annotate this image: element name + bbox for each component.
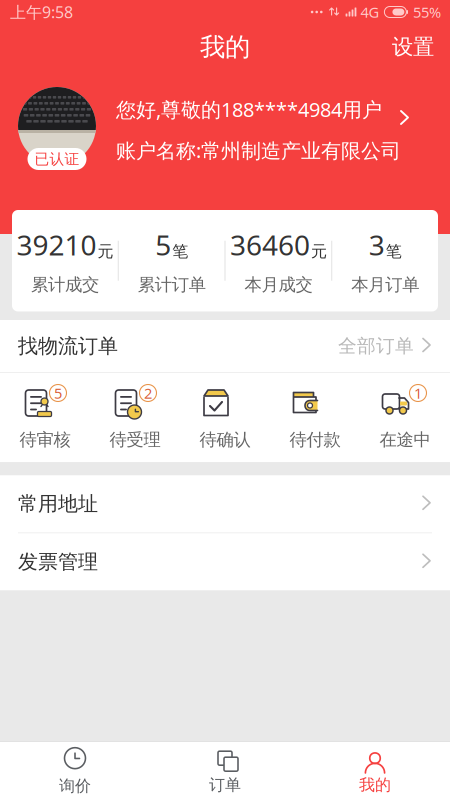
staticText: 上午9:58 — [10, 1, 73, 23]
staticText: 2 — [144, 383, 152, 403]
button[interactable]: 设置 — [376, 24, 450, 70]
staticText: 本月成交 — [244, 274, 312, 295]
staticText: 待受理 — [109, 429, 160, 450]
button[interactable]: 询价 — [0, 742, 150, 800]
staticText: 询价 — [59, 776, 91, 796]
button[interactable]: 常用地址 — [0, 475, 450, 532]
staticText: 已认证 — [34, 150, 79, 168]
button[interactable]: 订单 — [150, 742, 300, 800]
staticText: 累计成交 — [31, 274, 99, 295]
button[interactable]: 1 — [360, 386, 450, 450]
staticText: 在途中 — [379, 429, 430, 450]
staticText: 常用地址 — [18, 491, 98, 516]
staticText: 元 — [311, 241, 327, 261]
staticText: 找物流订单 — [18, 334, 118, 358]
button[interactable]: 待确认 — [180, 386, 270, 450]
staticText: 待付款 — [289, 429, 340, 450]
staticText: 我的 — [359, 775, 391, 795]
staticText: 4G — [360, 2, 379, 22]
button[interactable]: 发票管理 — [0, 533, 450, 590]
staticText: 39210 — [16, 226, 96, 263]
button[interactable]: 已认证 — [0, 70, 450, 174]
staticText: 1 — [414, 383, 422, 403]
button[interactable]: 2 — [90, 386, 180, 450]
staticText: 本月订单 — [351, 274, 419, 295]
staticText: 待审核 — [19, 429, 70, 450]
staticText: 5 — [155, 226, 171, 263]
staticText: 55% — [413, 2, 441, 22]
button[interactable]: 5 — [0, 386, 90, 450]
button[interactable]: 找物流订单 — [0, 320, 450, 372]
staticText: 发票管理 — [18, 549, 98, 574]
staticText: 5 — [54, 383, 62, 403]
staticText: 账户名称:常州制造产业有限公司 — [116, 137, 401, 164]
staticText: 您好,尊敬的188****4984用户 — [116, 96, 382, 123]
button[interactable]: 我的 — [300, 742, 450, 800]
staticText: 全部订单 — [338, 334, 414, 357]
staticText: 笔 — [386, 241, 402, 261]
staticText: 设置 — [392, 34, 434, 60]
button[interactable]: 待付款 — [270, 386, 360, 450]
staticText: 元 — [97, 241, 113, 261]
staticText: 笔 — [172, 241, 188, 261]
staticText: 我的 — [200, 31, 250, 62]
staticText: 订单 — [209, 775, 241, 795]
staticText: 36460 — [230, 226, 310, 263]
staticText: 待确认 — [199, 429, 250, 450]
staticText: 累计订单 — [138, 274, 206, 295]
staticText: 3 — [369, 226, 385, 263]
